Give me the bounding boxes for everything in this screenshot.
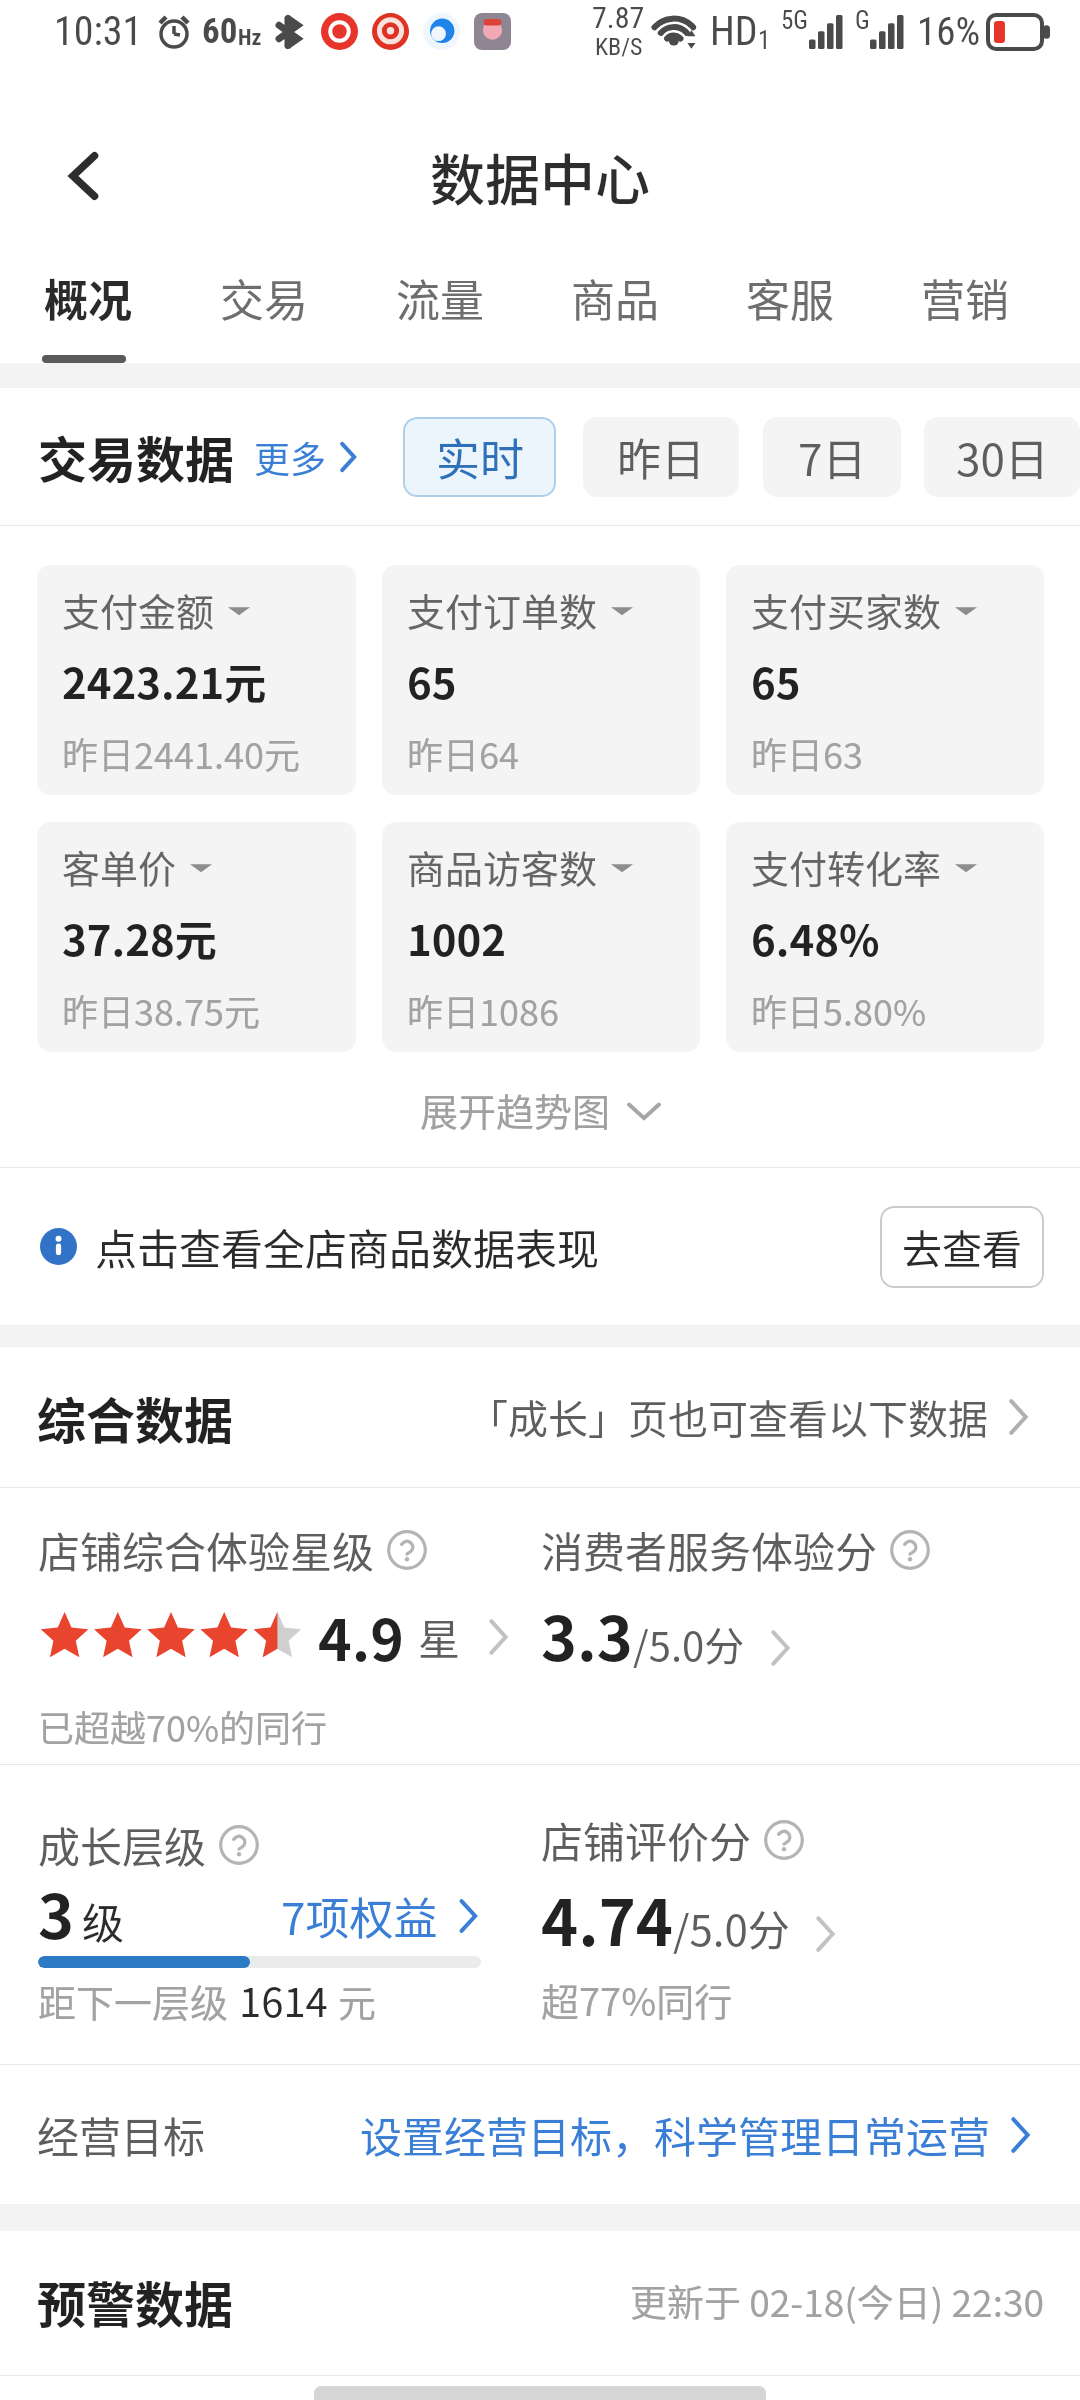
staticText: 级 (82, 1890, 125, 1951)
staticText: 客单价 (62, 839, 177, 894)
staticText: 1 (758, 26, 771, 55)
staticText: 更多 (254, 431, 327, 483)
staticText: 距下一层级 (38, 1973, 229, 2028)
staticText: 昨日2441.40元 (62, 727, 300, 779)
staticText: 商品访客数 (407, 839, 598, 894)
staticText: 6.48% (751, 907, 880, 968)
button[interactable]: 经营目标 (37, 2065, 1037, 2204)
staticText: 消费者服务体验分 (541, 1519, 878, 1580)
staticText: 展开趋势图 (420, 1082, 611, 1137)
staticText: 昨日63 (751, 727, 863, 779)
button[interactable]: Back (46, 138, 122, 214)
staticText: 4.9 (318, 1595, 404, 1678)
button[interactable]: 3.3 (541, 1590, 797, 1678)
button[interactable]: 客服 (702, 252, 877, 363)
button[interactable]: 昨日 (583, 417, 739, 497)
staticText: 实时 (436, 425, 524, 489)
staticText: 7.87 (592, 0, 645, 35)
button[interactable]: 7日 (763, 417, 901, 497)
staticText: 营销 (921, 266, 1009, 330)
staticText: 65 (751, 650, 801, 711)
staticText: 60 (202, 11, 238, 52)
staticText: 「成长」页也可查看以下数据 (468, 1388, 988, 1446)
button[interactable]: 支付买家数 (726, 565, 1044, 795)
staticText: 5G (781, 6, 809, 35)
staticText: 昨日38.75元 (62, 984, 260, 1036)
staticText: 去查看 (902, 1218, 1022, 1276)
staticText: 流量 (396, 266, 484, 330)
staticText: 4.74 (541, 1873, 673, 1964)
staticText: /5.0分 (673, 1897, 790, 1958)
button[interactable]: 4.74 (541, 1873, 842, 1964)
staticText: 10:31 (54, 8, 143, 55)
staticText: HD (710, 8, 758, 55)
staticText: 已超越70%的同行 (38, 1700, 328, 1752)
staticText: 16% (917, 9, 981, 55)
button[interactable]: 「成长」页也可查看以下数据 (468, 1388, 1035, 1446)
staticText: 昨日1086 (407, 984, 559, 1036)
staticText: 店铺综合体验星级 (38, 1519, 375, 1580)
staticText: KB/S (595, 33, 643, 61)
button[interactable]: 支付订单数 (382, 565, 700, 795)
staticText: /5.0分 (633, 1615, 745, 1673)
staticText: 综合数据 (37, 1382, 234, 1453)
staticText: 交易 (220, 266, 308, 330)
staticText: 支付金额 (62, 582, 215, 637)
staticText: 成长层级 (38, 1814, 207, 1875)
staticText: 客服 (746, 266, 834, 330)
staticText: 7项权益 (281, 1884, 438, 1948)
staticText: 商品 (571, 266, 659, 330)
button[interactable]: 展开趋势图 (0, 1052, 1080, 1167)
button[interactable]: 流量 (352, 252, 527, 363)
staticText: 点击查看全店商品数据表现 (95, 1216, 600, 1277)
staticText: 预警数据 (37, 2266, 234, 2337)
button[interactable]: 实时 (403, 417, 556, 497)
staticText: G (855, 6, 870, 35)
staticText: 交易数据 (38, 421, 235, 492)
staticText: 65 (407, 650, 457, 711)
staticText: 经营目标 (37, 2104, 206, 2165)
button[interactable]: 30日 (924, 417, 1080, 497)
staticText: 1614 (239, 1971, 328, 2029)
button[interactable]: 概况 (0, 252, 176, 363)
staticText: 3.3 (541, 1590, 633, 1678)
staticText: 支付订单数 (407, 582, 598, 637)
button[interactable]: 支付金额 (37, 565, 356, 795)
button[interactable]: 支付转化率 (726, 822, 1044, 1052)
staticText: Hz (238, 25, 262, 51)
staticText: 超77%同行 (541, 1972, 733, 2027)
staticText: 更新于 02-18(今日) 22:30 (630, 2274, 1044, 2328)
staticText: 支付买家数 (751, 582, 942, 637)
button[interactable]: 营销 (877, 252, 1052, 363)
staticText: 30日 (956, 425, 1049, 489)
button[interactable]: 交易 (176, 252, 352, 363)
button[interactable]: 4.9 (38, 1595, 515, 1678)
button[interactable]: 去查看 (880, 1206, 1044, 1288)
staticText: 昨日5.80% (751, 984, 927, 1036)
staticText: 数据中心 (430, 136, 651, 216)
staticText: 3 (38, 1868, 74, 1956)
staticText: 元 (338, 1973, 377, 2028)
button[interactable]: 商品 (527, 252, 702, 363)
staticText: 设置经营目标，科学管理日常运营 (360, 2104, 991, 2165)
button[interactable]: 更多 (254, 431, 362, 483)
staticText: 昨日 (617, 425, 705, 489)
staticText: 37.28元 (62, 907, 217, 968)
staticText: 昨日64 (407, 727, 519, 779)
button[interactable]: 7项权益 (281, 1892, 484, 1956)
button[interactable]: 客单价 (37, 822, 356, 1052)
staticText: 7日 (798, 425, 867, 489)
staticText: 1002 (407, 907, 507, 968)
staticText: 店铺评价分 (541, 1809, 752, 1870)
staticText: 2423.21元 (62, 650, 267, 711)
staticText: 星 (418, 1606, 461, 1667)
button[interactable]: 商品访客数 (382, 822, 700, 1052)
staticText: 概况 (44, 266, 132, 330)
staticText: 支付转化率 (751, 839, 942, 894)
